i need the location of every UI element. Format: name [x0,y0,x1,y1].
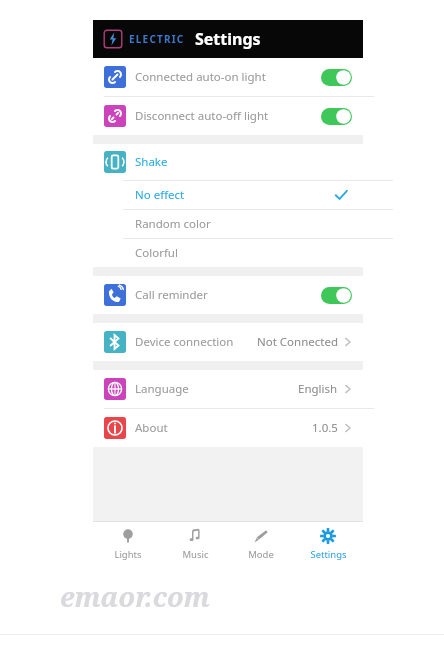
button[interactable]: Language [93,370,363,408]
button[interactable]: Lights [97,522,159,566]
button[interactable]: Settings [297,522,359,566]
other: Language [104,378,126,400]
staticText: ELECTRIC [129,32,185,46]
button[interactable]: Mode [230,522,292,566]
other: About [104,417,126,439]
button[interactable]: No effect [93,181,363,209]
other: link [104,66,126,88]
staticText: emaor.com [60,578,210,615]
button[interactable]: Device connection [93,323,363,361]
staticText: 1.0.5 [312,420,338,436]
other: link [104,105,126,127]
staticText: Connected auto-on light [135,69,266,85]
staticText: Lights [114,548,142,561]
button[interactable]: Music [164,522,226,566]
staticText: English [298,381,338,397]
staticText: Mode [248,548,274,561]
other: Device connection [104,331,126,353]
button[interactable]: Call reminder [93,276,363,314]
staticText: Settings [195,28,261,50]
staticText: Music [182,548,209,561]
staticText: Device connection [135,334,234,350]
staticText: No effect [135,187,185,203]
staticText: Call reminder [135,287,208,303]
staticText: Language [135,381,189,397]
other: Music [187,528,203,544]
other: Call reminder [104,284,126,306]
button[interactable]: About [93,409,363,447]
other: Settings [320,528,336,544]
button[interactable]: Colorful [93,239,363,267]
staticText: Disconnect auto-off light [135,108,269,124]
button[interactable]: Random color [93,210,363,238]
staticText: Random color [135,216,211,232]
other: Mode [253,528,269,544]
staticText: About [135,420,168,436]
button[interactable]: Shake [93,144,363,180]
staticText: Not Connected [257,334,338,350]
button[interactable]: link [93,58,363,96]
staticText: Colorful [135,245,178,261]
other: Shake [104,151,126,173]
staticText: Settings [310,548,347,561]
button[interactable]: link [93,97,363,135]
other: Lights [120,528,136,544]
staticText: Shake [135,154,168,170]
